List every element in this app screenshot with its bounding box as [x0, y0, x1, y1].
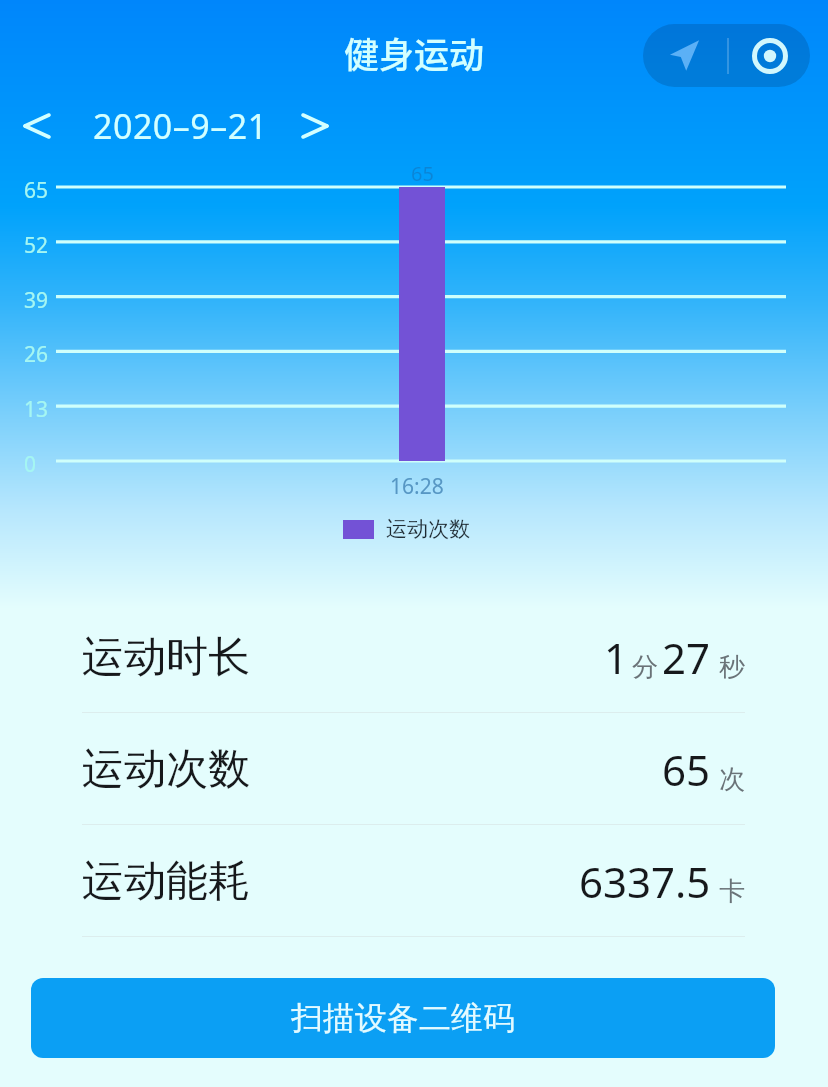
button[interactable]: Previous day	[12, 95, 62, 157]
staticText: 运动次数	[386, 516, 470, 542]
staticText: 次	[719, 763, 745, 796]
staticText: 27	[662, 629, 711, 686]
staticText: 65	[411, 160, 434, 187]
button[interactable]: Share	[643, 24, 727, 87]
button[interactable]: Next day	[290, 95, 340, 157]
staticText: 1	[604, 629, 629, 686]
staticText: 运动时长	[82, 631, 250, 684]
button[interactable]: 运动次数	[0, 713, 828, 825]
staticText: 扫描设备二维码	[291, 998, 515, 1038]
staticText: 26	[24, 340, 49, 369]
staticText: 秒	[719, 651, 745, 684]
staticText: 65	[662, 741, 711, 798]
staticText: 0	[24, 450, 37, 479]
button[interactable]: 运动时长	[0, 601, 828, 713]
button[interactable]: 运动能耗	[0, 825, 828, 937]
staticText: 65	[24, 176, 49, 205]
staticText: 52	[24, 231, 49, 260]
staticText: 6337.5	[579, 853, 711, 910]
staticText: 健身运动	[344, 27, 485, 78]
staticText: 分	[632, 651, 658, 684]
staticText: 39	[24, 286, 49, 315]
staticText: 运动能耗	[82, 855, 250, 908]
staticText: 13	[24, 395, 49, 424]
button[interactable]: 扫描设备二维码	[31, 978, 775, 1058]
button[interactable]: More	[729, 24, 810, 87]
staticText: 卡	[719, 875, 745, 908]
staticText: 16:28	[390, 472, 444, 501]
staticText: 2020–9–21	[93, 103, 268, 149]
staticText: 运动次数	[82, 743, 250, 796]
